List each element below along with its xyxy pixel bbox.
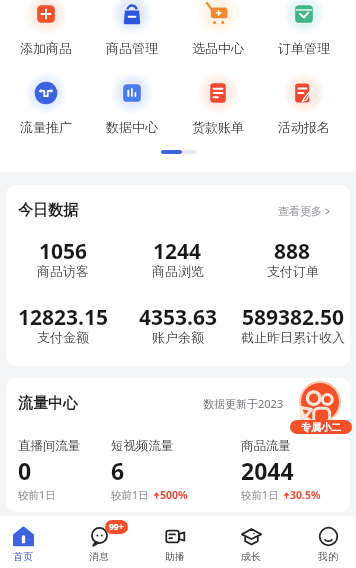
- staticText: 截止昨日累计收入: [241, 329, 345, 345]
- staticText: 1056: [39, 237, 88, 266]
- staticText: 添加商品: [20, 40, 72, 56]
- button[interactable]: 数据中心: [89, 71, 175, 133]
- staticText: 888: [274, 237, 311, 266]
- button[interactable]: 首页: [0, 516, 49, 568]
- staticText: 消息: [89, 550, 109, 563]
- button[interactable]: 消息: [73, 516, 125, 568]
- staticText: 首页: [13, 550, 33, 563]
- staticText: 查看更多: [278, 204, 322, 218]
- button[interactable]: 添加商品: [3, 0, 89, 54]
- staticText: 今日数据: [18, 201, 78, 220]
- staticText: 商品访客: [37, 263, 89, 279]
- staticText: 12823.15: [18, 303, 108, 332]
- staticText: 数据中心: [106, 119, 158, 135]
- button[interactable]: 助播: [149, 516, 201, 568]
- staticText: 支付金额: [37, 329, 89, 345]
- button[interactable]: 商品管理: [89, 0, 175, 54]
- button[interactable]: 活动报名: [261, 71, 347, 133]
- staticText: 成长: [241, 550, 261, 563]
- button[interactable]: 选品中心: [175, 0, 261, 54]
- staticText: 2044: [241, 455, 294, 486]
- staticText: 30.5%: [290, 488, 321, 502]
- staticText: 直播间流量: [18, 438, 81, 454]
- staticText: 短视频流量: [111, 438, 174, 454]
- button[interactable]: 查看更多: [276, 202, 337, 220]
- staticText: 较前1日: [18, 488, 56, 502]
- button[interactable]: 货款账单: [175, 71, 261, 133]
- button[interactable]: 我的: [302, 516, 354, 568]
- staticText: 1244: [153, 237, 202, 266]
- staticText: 订单管理: [278, 40, 330, 56]
- button[interactable]: 成长: [225, 516, 277, 568]
- staticText: 我的: [318, 550, 338, 563]
- staticText: 较前1日: [111, 488, 149, 502]
- staticText: 助播: [165, 550, 185, 563]
- button[interactable]: 流量推广: [3, 71, 89, 133]
- staticText: 4353.63: [139, 303, 217, 332]
- button[interactable]: 专属小二客服: [288, 381, 354, 435]
- staticText: 货款账单: [192, 119, 244, 135]
- staticText: 6: [111, 455, 125, 486]
- staticText: 支付订单: [267, 263, 319, 279]
- staticText: 商品流量: [241, 438, 291, 454]
- staticText: 99+: [109, 521, 124, 533]
- staticText: 商品管理: [106, 40, 158, 56]
- staticText: 专属小二: [301, 421, 341, 434]
- staticText: 数据更新于2023: [203, 396, 284, 411]
- staticText: 流量中心: [18, 394, 78, 413]
- button[interactable]: 订单管理: [261, 0, 347, 54]
- staticText: 0: [18, 455, 32, 486]
- staticText: 较前1日: [241, 488, 279, 502]
- staticText: 商品浏览: [152, 263, 204, 279]
- staticText: 活动报名: [278, 119, 330, 135]
- staticText: 选品中心: [192, 40, 244, 56]
- staticText: 流量推广: [20, 119, 72, 135]
- staticText: 589382.50: [242, 303, 344, 332]
- staticText: 账户余额: [152, 329, 204, 345]
- staticText: 500%: [160, 488, 188, 502]
